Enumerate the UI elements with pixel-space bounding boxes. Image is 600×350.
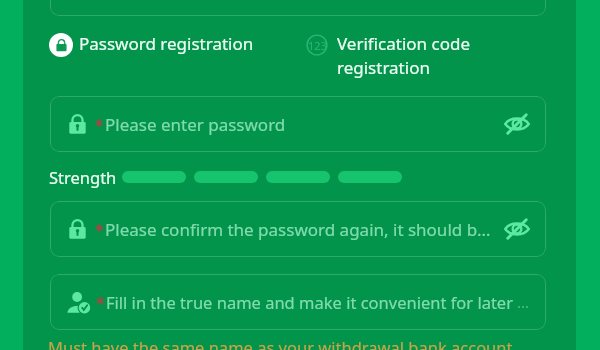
staticText: Must have the same name as your withdraw… [48,336,513,350]
staticText: Strength [49,166,117,188]
staticText: ... [513,292,532,312]
button[interactable]: Show password [502,109,532,139]
button[interactable]: Please enter your mobile number [50,0,546,16]
staticText: 123 [308,38,327,53]
button[interactable]: 123 [306,32,471,79]
button[interactable]: Fill in the true name and make it conven… [50,274,546,330]
button[interactable]: Password registration [49,32,254,56]
button[interactable]: Show password [502,214,532,244]
staticText: Please confirm the password again, it sh… [105,218,502,241]
button[interactable]: Please confirm the password again, it sh… [50,201,546,257]
staticText: Fill in the true name and make it conven… [106,291,513,313]
staticText: Password registration [79,32,254,55]
staticText: Verification code registration [337,32,471,79]
button[interactable]: Please enter password [50,96,546,152]
staticText: Please enter password [105,113,502,136]
